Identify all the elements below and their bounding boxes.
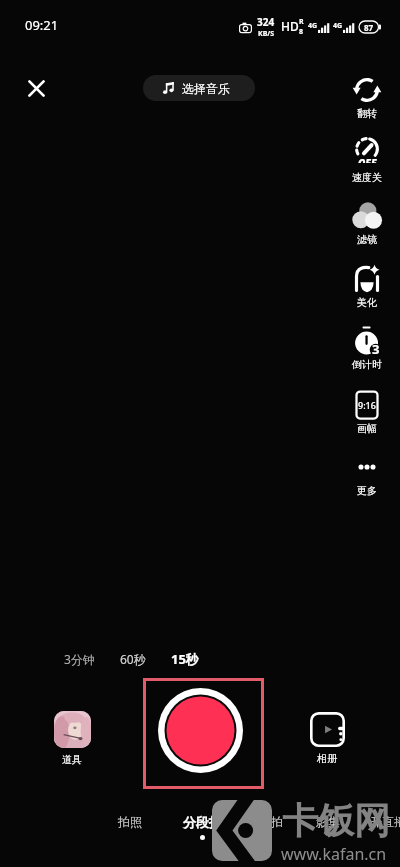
staticText: HD bbox=[281, 18, 299, 34]
button[interactable]: Speed bbox=[337, 134, 397, 184]
staticText: 4G bbox=[308, 21, 318, 31]
staticText: 相册 bbox=[317, 752, 337, 765]
button[interactable]: Aspect ratio bbox=[337, 390, 397, 435]
staticText: www.kafan.cn bbox=[281, 843, 387, 865]
staticText: 影集 bbox=[316, 814, 340, 829]
button[interactable]: Close bbox=[20, 72, 52, 104]
staticText: 选择音乐 bbox=[182, 81, 230, 96]
button[interactable]: More bbox=[337, 452, 397, 497]
staticText: OFF bbox=[358, 156, 377, 163]
button[interactable]: 15秒 bbox=[163, 646, 207, 672]
staticText: 60秒 bbox=[120, 651, 146, 667]
staticText: 滤镜 bbox=[357, 233, 377, 246]
staticText: 道具 bbox=[62, 753, 82, 766]
button[interactable]: Timer bbox=[337, 326, 397, 371]
staticText: 87 bbox=[364, 22, 374, 33]
button[interactable]: Flip camera bbox=[337, 75, 397, 120]
button[interactable]: 相册 bbox=[301, 712, 353, 765]
staticText: 15秒 bbox=[171, 650, 199, 668]
staticText: 9:16 bbox=[358, 399, 376, 411]
staticText: 8 bbox=[299, 27, 304, 37]
staticText: 画幅 bbox=[357, 422, 377, 435]
staticText: 分段拍 bbox=[183, 814, 222, 830]
button[interactable]: 开直播 bbox=[368, 814, 400, 834]
staticText: 卡饭网 bbox=[282, 798, 390, 843]
staticText: 3 bbox=[372, 340, 380, 358]
staticText: 拍照 bbox=[118, 814, 142, 829]
staticText: 3分钟 bbox=[64, 651, 95, 667]
staticText: 324 bbox=[257, 15, 275, 29]
button[interactable]: Record bbox=[158, 688, 243, 773]
staticText: 4G bbox=[333, 21, 343, 31]
staticText: 09:21 bbox=[25, 16, 59, 34]
staticText: 快拍 bbox=[259, 814, 283, 829]
button[interactable]: 快拍 bbox=[251, 814, 291, 834]
staticText: R bbox=[299, 17, 304, 27]
staticText: 开直播 bbox=[370, 814, 400, 829]
button[interactable]: 拍照 bbox=[110, 814, 150, 834]
staticText: KB/S bbox=[258, 29, 275, 39]
button[interactable]: 道具 bbox=[46, 711, 98, 766]
staticText: 翻转 bbox=[357, 107, 377, 120]
button[interactable]: 影集 bbox=[308, 814, 348, 834]
staticText: 更多 bbox=[357, 484, 377, 497]
button[interactable]: 60秒 bbox=[112, 647, 154, 671]
button[interactable]: Filter bbox=[337, 201, 397, 246]
button[interactable]: 3分钟 bbox=[56, 647, 103, 671]
staticText: 倒计时 bbox=[352, 358, 382, 371]
button[interactable]: 选择音乐 bbox=[143, 75, 255, 101]
button[interactable]: 分段拍 bbox=[175, 814, 229, 840]
button[interactable]: Beautify bbox=[337, 264, 397, 309]
staticText: 美化 bbox=[357, 296, 377, 309]
staticText: 速度关 bbox=[352, 171, 382, 184]
